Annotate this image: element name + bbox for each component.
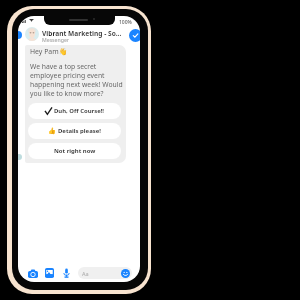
- staticText: 100%: [119, 19, 132, 26]
- button[interactable]: Photos: [45, 268, 54, 278]
- button[interactable]: Emoji: [121, 269, 130, 278]
- button[interactable]: Hey Pam👋: [25, 45, 126, 57]
- staticText: 👍: [48, 127, 56, 135]
- staticText: Aa: [82, 270, 89, 277]
- staticText: Messenger: [42, 36, 69, 43]
- button[interactable]: Back: [18, 31, 22, 39]
- staticText: We have a top secret employee pricing ev…: [30, 62, 126, 98]
- button[interactable]: Camera: [28, 269, 38, 279]
- button[interactable]: Voice message: [63, 268, 70, 278]
- staticText: Not right now: [54, 147, 96, 155]
- button[interactable]: Duh, Off Course!!: [28, 103, 121, 119]
- staticText: Details please!: [58, 127, 101, 135]
- staticText: Hey Pam👋: [30, 47, 68, 56]
- button[interactable]: Verified account: [129, 29, 140, 42]
- staticText: Duh, Off Course!!: [54, 107, 105, 115]
- button[interactable]: Aa: [78, 267, 132, 279]
- button[interactable]: 👍: [28, 123, 121, 139]
- button[interactable]: Not right now: [28, 143, 121, 159]
- staticText: Vibrant Marketing - So...: [42, 29, 122, 38]
